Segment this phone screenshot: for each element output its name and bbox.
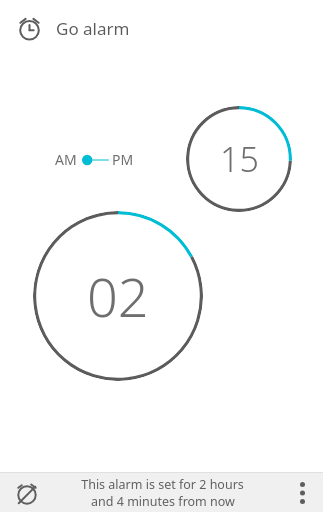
staticText: Go alarm <box>56 17 130 40</box>
staticText: PM <box>112 150 134 169</box>
button[interactable]: 15 <box>186 106 292 212</box>
button[interactable]: 02 <box>33 211 203 381</box>
button[interactable]: More options <box>281 473 323 512</box>
button[interactable]: AM <box>55 150 134 169</box>
staticText: and 4 minutes from now <box>91 493 235 510</box>
staticText: 02 <box>87 259 149 333</box>
button[interactable]: Turn alarm off <box>10 476 44 510</box>
button[interactable]: This alarm is set for 2 hours <box>44 476 281 510</box>
staticText: 15 <box>220 136 259 182</box>
button[interactable]: Alarm <box>14 13 44 43</box>
staticText: This alarm is set for 2 hours <box>81 476 244 493</box>
staticText: AM <box>55 150 77 169</box>
